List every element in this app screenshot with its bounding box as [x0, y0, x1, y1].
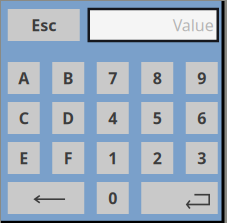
staticText: 8: [153, 67, 162, 89]
button[interactable]: B: [52, 62, 84, 94]
button[interactable]: 4: [97, 102, 129, 134]
staticText: C: [19, 107, 29, 129]
staticText: Value: [173, 14, 214, 36]
button[interactable]: F: [52, 142, 84, 174]
button[interactable]: 8: [141, 62, 173, 94]
staticText: E: [19, 147, 28, 169]
button[interactable]: 6: [186, 102, 218, 134]
button[interactable]: Esc: [8, 9, 80, 41]
staticText: 6: [197, 107, 206, 129]
staticText: 3: [197, 147, 206, 169]
button[interactable]: 3: [186, 142, 218, 174]
staticText: 9: [197, 67, 206, 89]
staticText: F: [64, 147, 73, 169]
button[interactable]: 1: [97, 142, 129, 174]
button[interactable]: A: [8, 62, 40, 94]
staticText: D: [62, 107, 74, 129]
button[interactable]: D: [52, 102, 84, 134]
staticText: 0: [108, 187, 117, 209]
button[interactable]: 9: [186, 62, 218, 94]
button[interactable]: 5: [141, 102, 173, 134]
staticText: 1: [108, 147, 117, 169]
button[interactable]: 2: [141, 142, 173, 174]
button[interactable]: Backspace: [8, 182, 84, 214]
staticText: A: [18, 67, 29, 89]
button[interactable]: E: [8, 142, 40, 174]
button[interactable]: 0: [97, 182, 129, 214]
button[interactable]: C: [8, 102, 40, 134]
staticText: B: [63, 67, 74, 89]
button[interactable]: Enter: [141, 182, 218, 214]
button[interactable]: 7: [97, 62, 129, 94]
button[interactable]: Value: [89, 9, 218, 41]
staticText: 5: [153, 107, 162, 129]
staticText: Esc: [31, 14, 56, 36]
staticText: 2: [153, 147, 162, 169]
staticText: 7: [108, 67, 117, 89]
staticText: 4: [108, 107, 117, 129]
